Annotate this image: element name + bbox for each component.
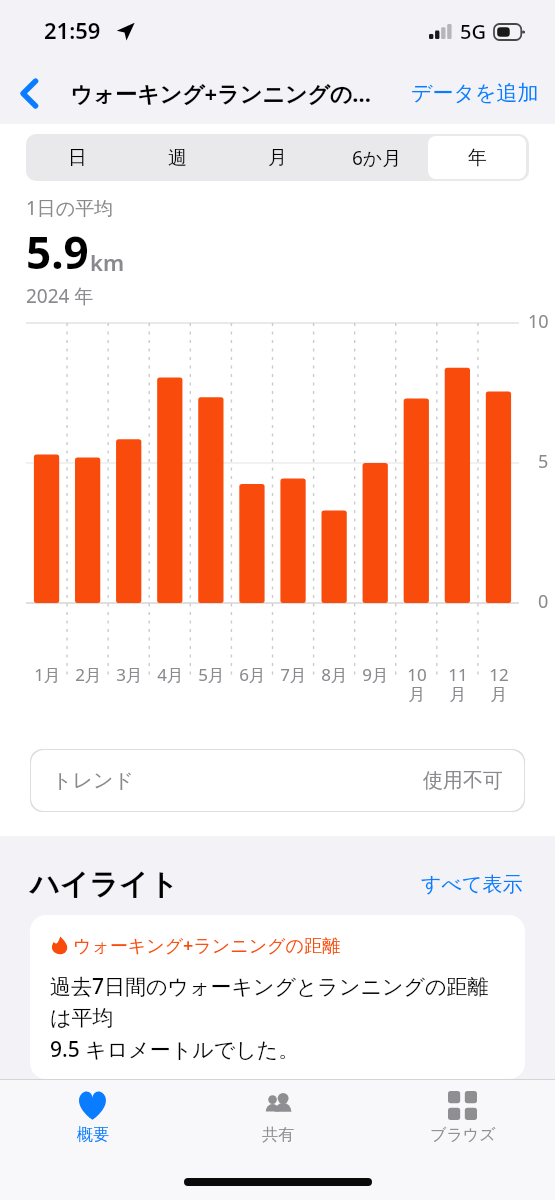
staticText: km [90, 247, 125, 277]
staticText: 21:59 [44, 15, 101, 45]
staticText: 5.9 [26, 222, 89, 282]
staticText: 週 [168, 146, 187, 170]
staticText: 7月 [280, 663, 307, 686]
button[interactable]: データを追加 [407, 72, 543, 114]
staticText: 使用不可 [423, 768, 503, 793]
staticText: 2月 [75, 663, 102, 686]
button[interactable]: 共有 [185, 1080, 370, 1164]
button[interactable]: 月 [228, 136, 326, 179]
button[interactable]: 戻る [0, 62, 58, 124]
staticText: 4月 [157, 663, 184, 686]
staticText: 8月 [321, 663, 348, 686]
button[interactable]: ウォーキング+ランニングの距離 [30, 915, 525, 1079]
staticText: ウォーキング+ランニングの… [70, 78, 372, 108]
staticText: 5G [460, 18, 486, 45]
staticText: 6月 [239, 663, 266, 686]
staticText: 6か月 [352, 145, 402, 171]
staticText: 10 [528, 309, 549, 334]
staticText: 2024 年 [26, 283, 94, 309]
button[interactable]: すべて表示 [419, 866, 525, 903]
staticText: 11 月 [448, 663, 468, 705]
staticText: 1月 [34, 663, 61, 686]
staticText: 年 [468, 146, 487, 170]
staticText: ブラウズ [430, 1125, 496, 1145]
button[interactable]: トレンド [30, 749, 525, 812]
button[interactable]: 日 [29, 136, 126, 179]
staticText: 1日の平均 [26, 195, 114, 221]
staticText: 9月 [362, 663, 389, 686]
staticText: 共有 [262, 1125, 294, 1145]
button[interactable]: 年 [428, 136, 526, 179]
staticText: 月 [268, 146, 287, 170]
staticText: 5月 [198, 663, 225, 686]
button[interactable]: ブラウズ [370, 1080, 555, 1164]
staticText: 過去7日間のウォーキングとランニングの距離は平均 9.5 キロメートルでした。 [50, 972, 505, 1064]
staticText: ハイライト [30, 866, 179, 903]
button[interactable]: 週 [128, 136, 226, 179]
staticText: ウォーキング+ランニングの距離 [73, 933, 340, 958]
staticText: データを追加 [411, 80, 539, 106]
staticText: トレンド [52, 768, 134, 793]
staticText: 12 月 [489, 663, 509, 705]
staticText: 概要 [77, 1125, 109, 1145]
staticText: 3月 [116, 663, 143, 686]
staticText: すべて表示 [421, 872, 523, 897]
staticText: 0 [538, 589, 549, 614]
button[interactable]: 6か月 [328, 136, 426, 179]
staticText: 5 [538, 449, 549, 474]
button[interactable]: 概要 [0, 1080, 185, 1164]
staticText: 日 [68, 146, 87, 170]
staticText: 10 月 [407, 663, 427, 705]
